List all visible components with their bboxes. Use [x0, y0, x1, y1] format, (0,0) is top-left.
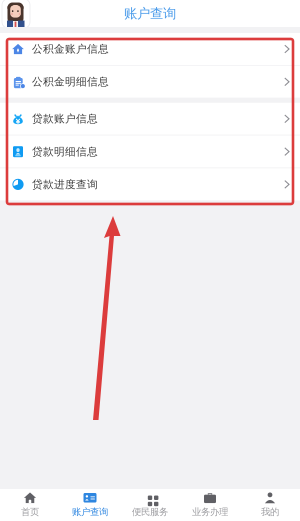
staticText: 业务办理 — [192, 506, 228, 518]
button[interactable]: 首页 — [0, 489, 60, 521]
staticText: 贷款进度查询 — [32, 178, 98, 191]
button[interactable]: 便民服务 — [120, 489, 180, 521]
button[interactable]: 公积金明细信息 — [0, 66, 300, 98]
staticText: 贷款账户信息 — [32, 112, 98, 125]
staticText: 账户查询 — [124, 5, 176, 22]
button[interactable]: 贷款账户信息 — [0, 103, 300, 135]
staticText: 我的 — [261, 506, 279, 518]
button[interactable]: Profile — [2, 0, 30, 28]
staticText: 公积金明细信息 — [32, 75, 109, 88]
staticText: 账户查询 — [72, 506, 108, 518]
button[interactable]: 账户查询 — [60, 489, 120, 521]
staticText: 贷款明细信息 — [32, 145, 98, 158]
button[interactable]: 业务办理 — [180, 489, 240, 521]
button[interactable]: 公积金账户信息 — [0, 33, 300, 65]
staticText: 首页 — [21, 506, 39, 518]
button[interactable]: 我的 — [240, 489, 300, 521]
button[interactable]: 贷款进度查询 — [0, 168, 300, 200]
staticText: 便民服务 — [132, 506, 168, 518]
button[interactable]: 贷款明细信息 — [0, 136, 300, 168]
staticText: 公积金账户信息 — [32, 42, 109, 55]
